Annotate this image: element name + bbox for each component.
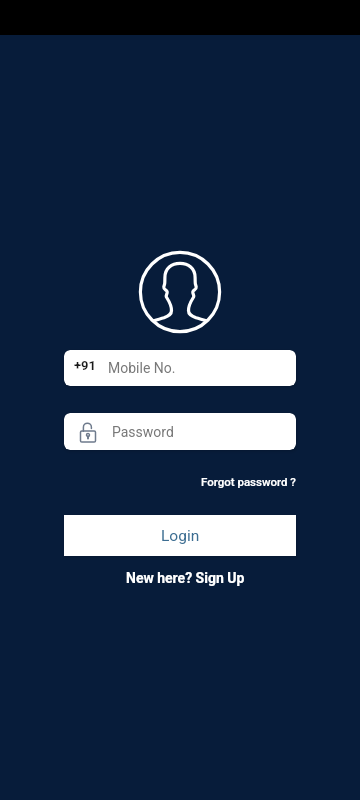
other: Password [78, 420, 98, 443]
button[interactable]: +91 [64, 350, 296, 386]
button[interactable]: Forgot password ? [176, 471, 296, 491]
staticText: Password [112, 424, 174, 440]
button[interactable]: Login [64, 515, 296, 556]
staticText: Login [161, 527, 200, 545]
button[interactable]: New here? Sign Up [85, 568, 285, 588]
button[interactable]: Password [64, 413, 296, 450]
staticText: New here? Sign Up [126, 570, 245, 586]
staticText: Forgot password ? [201, 475, 296, 488]
staticText: +91 [74, 358, 97, 373]
staticText: Mobile No. [108, 360, 176, 376]
